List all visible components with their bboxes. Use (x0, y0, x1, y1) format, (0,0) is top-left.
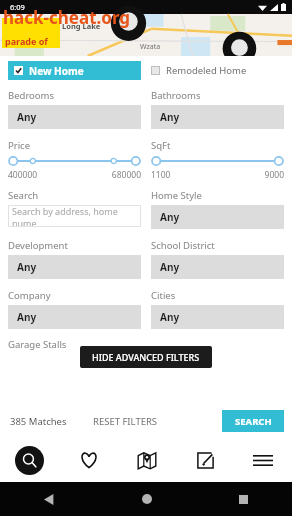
button[interactable]: Search by address, home nume (8, 205, 141, 227)
button[interactable]: Favorites (59, 438, 118, 482)
button[interactable]: Back (0, 482, 98, 516)
button[interactable]: Any (8, 305, 141, 329)
staticText: RESET FILTERS (93, 415, 158, 428)
button[interactable]: New Home (8, 61, 141, 80)
staticText: Company (8, 289, 51, 302)
staticText: Cities (151, 289, 176, 302)
staticText: Search (8, 189, 39, 202)
staticText: 6:09 (10, 2, 25, 12)
staticText: Search by address, home nume (12, 205, 141, 227)
staticText: Any (160, 110, 180, 124)
button[interactable]: RESET FILTERS (91, 413, 160, 430)
staticText: 385 Matches (10, 415, 67, 428)
staticText: Any (17, 310, 37, 324)
button[interactable]: Any (151, 305, 284, 329)
staticText: School District (151, 239, 215, 252)
button[interactable] (151, 154, 284, 168)
button[interactable]: Any (151, 255, 284, 279)
staticText: 9000 (264, 169, 284, 181)
staticText: Any (17, 110, 37, 124)
staticText: Home Style (151, 189, 202, 202)
button[interactable]: HIDE ADVANCED FILTERS (80, 346, 212, 368)
staticText: SqFt (151, 139, 171, 152)
staticText: hack-cheat.org (3, 6, 131, 29)
staticText: New Home (29, 64, 84, 78)
button[interactable]: SEARCH (222, 410, 284, 432)
staticText: Garage Stalls (8, 338, 67, 351)
button[interactable]: Any (151, 205, 284, 229)
staticText: 680000 (111, 169, 141, 181)
staticText: HIDE ADVANCED FILTERS (92, 351, 200, 363)
button[interactable]: Any (151, 105, 284, 129)
staticText: Bedrooms (8, 89, 55, 102)
button[interactable]: Recents (195, 482, 292, 516)
staticText: parade of (5, 35, 48, 47)
button[interactable]: Any (8, 105, 141, 129)
staticText: Price (8, 139, 31, 152)
staticText: Development (8, 239, 68, 252)
button[interactable]: Home (98, 482, 195, 516)
button[interactable]: Remodeled Home (151, 61, 284, 80)
staticText: Any (160, 210, 180, 224)
button[interactable]: 385 Matches (8, 413, 69, 430)
staticText: Wzata (140, 42, 161, 52)
button[interactable]: Map (118, 438, 176, 482)
staticText: Any (17, 260, 37, 274)
staticText: 1100 (151, 169, 264, 181)
staticText: Long Lake (62, 21, 101, 31)
button[interactable]: Edit (176, 438, 234, 482)
staticText: SEARCH (235, 415, 272, 428)
staticText: 400000 (8, 169, 111, 181)
button[interactable]: Search (0, 438, 59, 482)
staticText: Remodeled Home (166, 64, 247, 77)
button[interactable]: Menu (234, 438, 292, 482)
button[interactable] (8, 154, 141, 168)
staticText: Any (160, 260, 180, 274)
staticText: Bathrooms (151, 89, 201, 102)
button[interactable]: Any (8, 255, 141, 279)
staticText: Any (160, 310, 180, 324)
